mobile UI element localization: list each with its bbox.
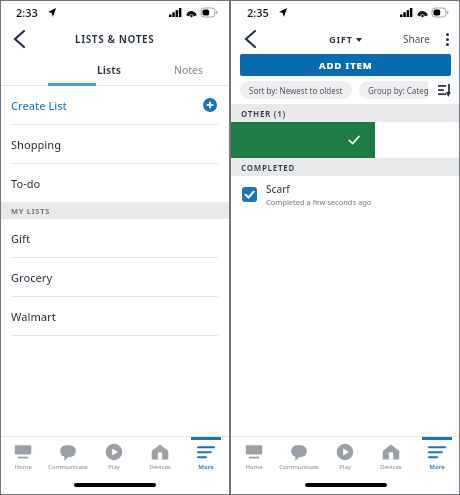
staticText: OTHER (1)	[241, 108, 286, 119]
staticText: Lists	[97, 63, 122, 77]
button[interactable]: Scarf	[231, 176, 460, 212]
staticText: GIFT	[329, 33, 353, 46]
button[interactable]: GIFT	[329, 33, 362, 46]
button[interactable]: Communicate	[276, 437, 322, 475]
button[interactable]: Home	[231, 437, 276, 475]
staticText: More	[429, 463, 445, 471]
button[interactable]: Lists	[69, 54, 149, 86]
staticText: 2:33	[16, 5, 38, 20]
button[interactable]: Sneakers	[231, 122, 460, 158]
button[interactable]: More options	[434, 26, 460, 52]
staticText: Updated a few seconds ago	[275, 143, 373, 153]
staticText: Walmart	[11, 309, 56, 324]
staticText: Play	[339, 463, 351, 471]
staticText: MY LISTS	[11, 206, 51, 216]
button[interactable]: ADD ITEM	[240, 54, 451, 76]
button[interactable]: Devices	[368, 437, 414, 475]
staticText: Grocery	[11, 270, 53, 285]
staticText: Share	[403, 32, 430, 46]
staticText: Notes	[174, 63, 204, 77]
staticText: More	[198, 463, 214, 471]
button[interactable]: Grocery	[0, 258, 229, 297]
button[interactable]: Play	[322, 437, 368, 475]
button[interactable]: Back	[2, 24, 36, 54]
button[interactable]: Back	[233, 24, 267, 54]
button[interactable]: Share	[399, 26, 434, 52]
button[interactable]: Sort by: Newest to oldest	[240, 81, 352, 99]
staticText: To-do	[11, 176, 41, 191]
button[interactable]: More	[183, 437, 229, 475]
button[interactable]: More	[414, 437, 460, 475]
button[interactable]: Gift	[0, 219, 229, 258]
staticText: Home	[14, 463, 32, 471]
button[interactable]: Group by: Category	[359, 81, 450, 99]
staticText: Communicate	[48, 463, 88, 471]
staticText: Group by: Category	[368, 85, 441, 96]
button[interactable]: Home	[0, 437, 45, 475]
button[interactable]: Notes	[149, 54, 229, 86]
button[interactable]: Sort options	[428, 76, 460, 104]
staticText: 2:35	[247, 5, 269, 20]
staticText: Communicate	[279, 463, 319, 471]
staticText: Play	[108, 463, 120, 471]
button[interactable]: Play	[91, 437, 137, 475]
staticText: Devices	[149, 463, 171, 471]
staticText: Create List	[11, 98, 67, 113]
staticText: Sort by: Newest to oldest	[249, 85, 343, 96]
other: Create List	[202, 97, 218, 113]
staticText: COMPLETED	[241, 162, 296, 173]
staticText: LISTS & NOTES	[75, 32, 155, 46]
staticText: Home	[245, 463, 263, 471]
button[interactable]: Shopping	[0, 125, 229, 164]
staticText: ADD ITEM	[319, 59, 373, 72]
button[interactable]: Walmart	[0, 297, 229, 336]
staticText: Gift	[11, 231, 31, 246]
staticText: Shopping	[11, 137, 61, 152]
button[interactable]: To-do	[0, 164, 229, 202]
staticText: Devices	[380, 463, 402, 471]
button[interactable]: Complete item	[231, 122, 375, 158]
button[interactable]: Communicate	[45, 437, 91, 475]
staticText: Scarf	[266, 182, 290, 196]
button[interactable]: Create List	[0, 86, 229, 125]
staticText: Completed a few seconds ago	[266, 197, 372, 207]
button[interactable]: Devices	[137, 437, 183, 475]
